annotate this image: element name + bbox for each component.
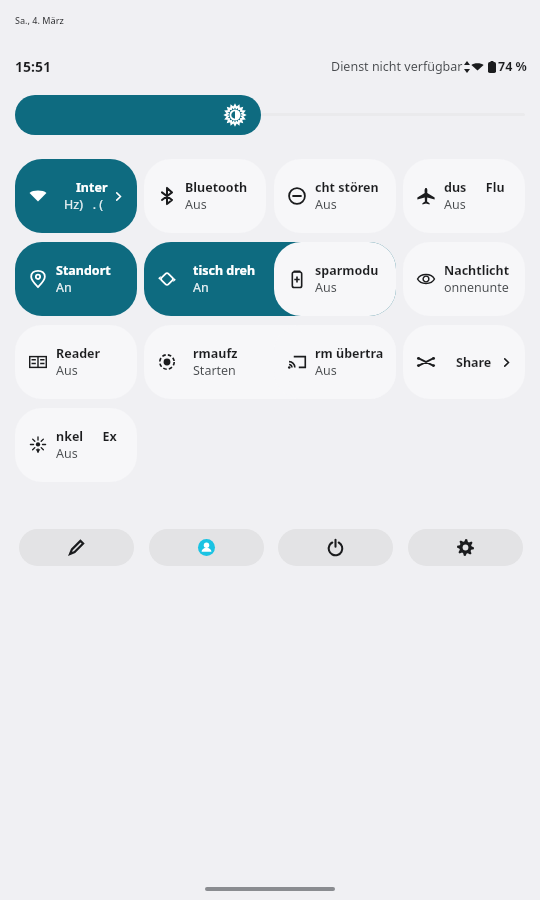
staticText: Aus bbox=[444, 196, 466, 213]
staticText: Nachtlicht bbox=[444, 262, 510, 279]
staticText: Aus bbox=[315, 196, 337, 213]
button[interactable]: Brightness bbox=[15, 95, 261, 135]
staticText: Starten bbox=[193, 362, 236, 379]
staticText: Share bbox=[456, 354, 492, 371]
staticText: Reader bbox=[56, 345, 101, 362]
staticText: onnenunte bbox=[444, 279, 509, 296]
button[interactable]: Power bbox=[278, 529, 393, 566]
button[interactable]: Bluetooth bbox=[144, 159, 266, 233]
staticText: Hz) . ( bbox=[64, 196, 103, 213]
staticText: Aus bbox=[315, 362, 337, 379]
staticText: An bbox=[56, 279, 72, 296]
button[interactable]: Reader bbox=[15, 325, 137, 399]
staticText: 74 % bbox=[498, 58, 527, 75]
staticText: Aus bbox=[56, 445, 78, 462]
button[interactable]: rmaufz bbox=[144, 325, 396, 399]
staticText: Sa., 4. März bbox=[15, 14, 64, 26]
staticText: rmaufz bbox=[193, 345, 238, 362]
button[interactable]: tisch dreh bbox=[144, 242, 396, 316]
staticText: rm übertra bbox=[315, 345, 384, 362]
staticText: cht stören bbox=[315, 179, 379, 196]
button[interactable]: Edit tiles bbox=[19, 529, 134, 566]
staticText: An bbox=[193, 279, 209, 296]
staticText: 15:51 bbox=[15, 57, 51, 76]
button[interactable]: sparmodu bbox=[274, 242, 396, 316]
button[interactable]: dus Flu bbox=[403, 159, 525, 233]
button[interactable]: Nachtlicht bbox=[403, 242, 525, 316]
staticText: Dienst nicht verfügbar bbox=[331, 58, 463, 75]
button[interactable]: Standort bbox=[15, 242, 137, 316]
staticText: tisch dreh bbox=[193, 262, 256, 279]
button[interactable]: Share bbox=[403, 325, 525, 399]
staticText: dus Flu bbox=[444, 179, 505, 196]
staticText: nkel Ex bbox=[56, 428, 117, 445]
staticText: Aus bbox=[315, 279, 337, 296]
staticText: Aus bbox=[56, 362, 78, 379]
staticText: sparmodu bbox=[315, 262, 379, 279]
button[interactable]: rm übertra bbox=[274, 325, 396, 399]
button[interactable]: nkel Ex bbox=[15, 408, 137, 482]
staticText: Inter bbox=[76, 179, 108, 196]
button[interactable]: User bbox=[149, 529, 264, 566]
button[interactable]: cht stören bbox=[274, 159, 396, 233]
button[interactable]: Inter bbox=[15, 159, 137, 233]
button[interactable]: Settings bbox=[408, 529, 523, 566]
staticText: Bluetooth bbox=[185, 179, 248, 196]
staticText: Aus bbox=[185, 196, 207, 213]
staticText: Standort bbox=[56, 262, 111, 279]
